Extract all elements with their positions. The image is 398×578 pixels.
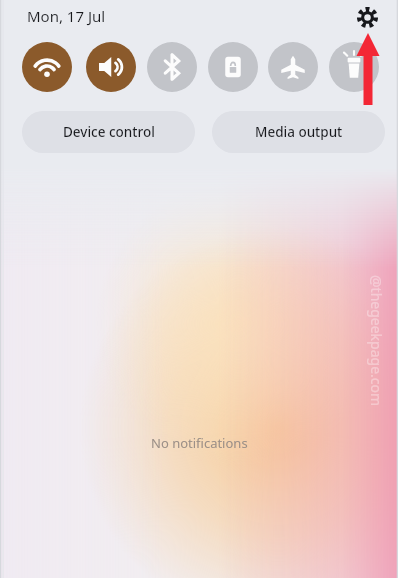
button[interactable]: Media output <box>212 111 385 153</box>
staticText: @thegeekpage.com <box>367 275 386 407</box>
button[interactable]: Bluetooth <box>147 42 197 92</box>
staticText: Device control <box>63 123 155 141</box>
button[interactable]: Sound <box>86 42 136 92</box>
button[interactable]: Device control <box>22 111 195 153</box>
button[interactable]: Settings <box>352 2 383 33</box>
staticText: Media output <box>255 123 343 141</box>
button[interactable]: Flashlight <box>329 42 379 92</box>
staticText: No notifications <box>151 434 248 452</box>
button[interactable]: Lock screen <box>208 42 258 92</box>
button[interactable]: Airplane mode <box>268 42 318 92</box>
button[interactable]: Wi-Fi <box>22 42 72 92</box>
staticText: Mon, 17 Jul <box>27 6 106 26</box>
